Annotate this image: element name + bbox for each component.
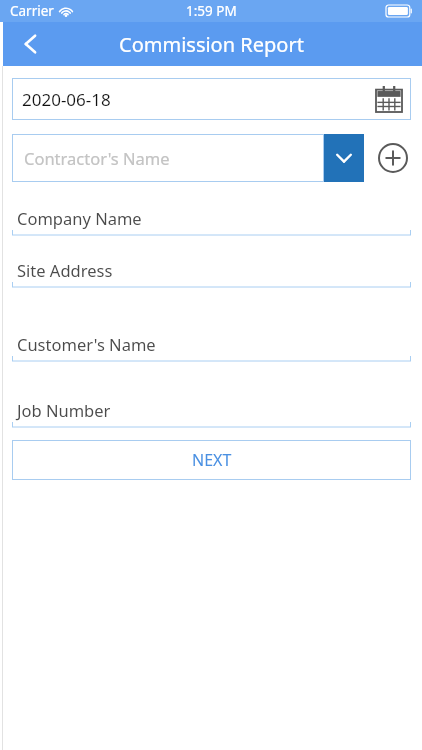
button[interactable]: NEXT: [12, 440, 411, 480]
staticText: Customer's Name: [17, 333, 156, 355]
button[interactable]: Customer's Name: [12, 332, 411, 362]
button[interactable]: Site Address: [12, 258, 411, 288]
button[interactable]: Back: [10, 22, 54, 66]
staticText: 1:59 PM: [186, 2, 237, 20]
button[interactable]: Open list: [324, 134, 364, 182]
staticText: Company Name: [17, 207, 142, 229]
staticText: Commission Report: [119, 31, 304, 58]
staticText: Job Number: [17, 399, 111, 421]
button[interactable]: 2020-06-18: [12, 78, 411, 120]
staticText: NEXT: [192, 449, 232, 471]
staticText: 2020-06-18: [22, 88, 111, 111]
staticText: Contractor's Name: [24, 147, 170, 169]
button[interactable]: Contractor's Name: [12, 134, 324, 182]
staticText: Site Address: [17, 259, 113, 281]
button[interactable]: Job Number: [12, 398, 411, 428]
staticText: Carrier: [10, 2, 54, 20]
button[interactable]: Pick date: [375, 85, 403, 113]
button[interactable]: Add contractor: [376, 141, 410, 175]
button[interactable]: Company Name: [12, 206, 411, 236]
